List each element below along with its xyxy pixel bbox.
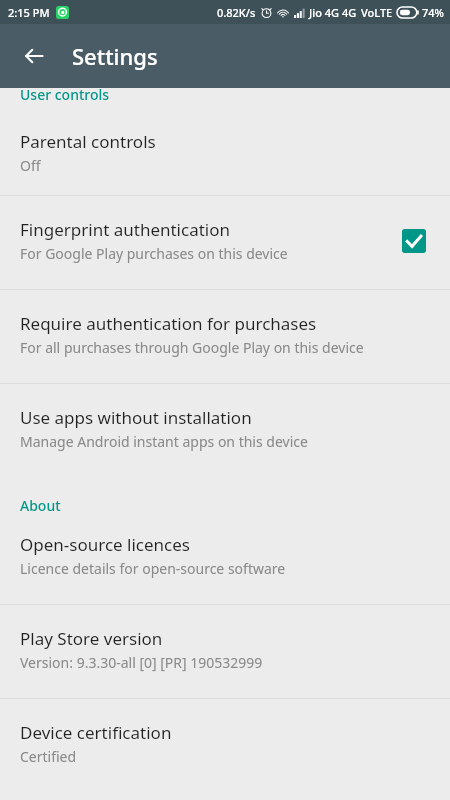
button[interactable]: Parental controls	[0, 122, 450, 195]
staticText: 2:15 PM	[8, 5, 50, 20]
staticText: Device certification	[20, 721, 172, 744]
button[interactable]: Use apps without installation	[0, 384, 450, 477]
staticText: 74%	[422, 5, 444, 20]
button[interactable]: Back	[10, 32, 58, 80]
staticText: Open-source licences	[20, 533, 190, 556]
button[interactable]: Device certification	[0, 699, 450, 792]
staticText: Settings	[72, 41, 158, 71]
button[interactable]: Fingerprint authentication	[0, 196, 450, 289]
staticText: Licence details for open-source software	[20, 559, 286, 578]
staticText: Certified	[20, 747, 77, 766]
button[interactable]: Fingerprint authentication toggle	[394, 221, 434, 261]
staticText: Fingerprint authentication	[20, 218, 231, 241]
staticText: For all purchases through Google Play on…	[20, 338, 364, 357]
staticText: Use apps without installation	[20, 406, 252, 429]
staticText: User controls	[20, 85, 110, 103]
button[interactable]: Require authentication for purchases	[0, 290, 450, 383]
staticText: Jio 4G 4G	[309, 5, 357, 20]
staticText: Parental controls	[20, 130, 156, 153]
staticText: Version: 9.3.30-all [0] [PR] 190532999	[20, 653, 263, 672]
staticText: Require authentication for purchases	[20, 312, 317, 335]
staticText: 0.82K/s	[217, 5, 256, 20]
button[interactable]: Open-source licences	[0, 533, 450, 604]
staticText: Play Store version	[20, 627, 163, 650]
staticText: About	[20, 496, 61, 515]
staticText: Manage Android instant apps on this devi…	[20, 432, 308, 451]
staticText: Off	[20, 156, 41, 175]
staticText: VoLTE	[361, 5, 393, 20]
staticText: For Google Play purchases on this device	[20, 244, 288, 263]
button[interactable]: Play Store version	[0, 605, 450, 698]
